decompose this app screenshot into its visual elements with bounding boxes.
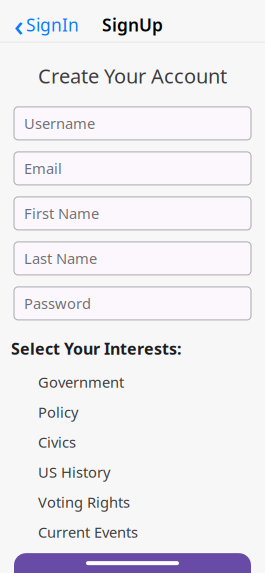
- staticText: SignIn: [26, 13, 79, 36]
- button[interactable]: Password: [14, 287, 251, 320]
- staticText: First Name: [24, 204, 99, 223]
- button[interactable]: Sign Up: [14, 553, 251, 573]
- staticText: SignUp: [102, 13, 163, 36]
- button[interactable]: Civics: [38, 427, 251, 457]
- button[interactable]: ‹: [6, 8, 87, 42]
- staticText: Voting Rights: [38, 492, 130, 512]
- staticText: Policy: [38, 402, 78, 422]
- button[interactable]: First Name: [14, 197, 251, 230]
- button[interactable]: Policy: [38, 397, 251, 427]
- staticText: Civics: [38, 432, 76, 452]
- staticText: US History: [38, 462, 110, 482]
- staticText: Last Name: [24, 249, 97, 268]
- staticText: ‹: [14, 5, 24, 44]
- staticText: Government: [38, 372, 124, 392]
- button[interactable]: Username: [14, 107, 251, 140]
- button[interactable]: Government: [38, 367, 251, 397]
- staticText: Create Your Account: [38, 62, 227, 89]
- button[interactable]: Last Name: [14, 242, 251, 275]
- staticText: Email: [24, 159, 62, 178]
- button[interactable]: Email: [14, 152, 251, 185]
- staticText: Select Your Interests:: [11, 338, 181, 359]
- button[interactable]: Current Events: [38, 517, 251, 547]
- button[interactable]: Voting Rights: [38, 487, 251, 517]
- staticText: Username: [24, 114, 95, 133]
- staticText: Current Events: [38, 522, 138, 542]
- staticText: Password: [24, 294, 91, 313]
- button[interactable]: US History: [38, 457, 251, 487]
